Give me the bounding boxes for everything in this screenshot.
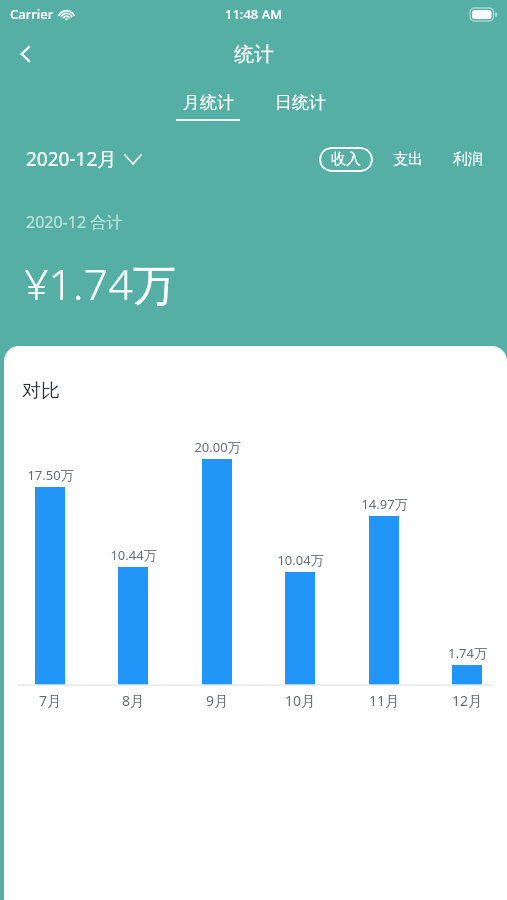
button[interactable]: 月统计	[170, 92, 246, 121]
staticText: 9月	[206, 691, 229, 710]
staticText: 日统计	[275, 92, 326, 113]
staticText: 17.50万	[27, 466, 74, 484]
staticText: 20.00万	[194, 438, 241, 456]
staticText: 7月	[39, 691, 62, 710]
staticText: 14.97万	[361, 495, 408, 513]
staticText: 对比	[22, 379, 60, 403]
button[interactable]: 利润	[449, 147, 487, 172]
staticText: 11:48 AM	[225, 5, 283, 23]
staticText: 统计	[234, 42, 274, 67]
staticText: 10.44万	[110, 546, 157, 564]
staticText: 8月	[122, 691, 145, 710]
button[interactable]: 支出	[389, 147, 427, 172]
staticText: 支出	[393, 150, 423, 169]
button[interactable]: Back	[4, 32, 48, 76]
staticText: 收入	[331, 150, 361, 169]
staticText: 10.04万	[277, 551, 324, 569]
staticText: 11月	[369, 691, 400, 710]
staticText: ¥1.74万	[24, 254, 176, 313]
staticText: 2020-12 合计	[26, 211, 123, 233]
button[interactable]: 收入	[319, 147, 373, 172]
staticText: 1.74万	[448, 644, 487, 662]
staticText: 月统计	[183, 92, 234, 113]
staticText: 2020-12月	[26, 146, 117, 172]
button[interactable]: 2020-12月	[26, 146, 141, 172]
staticText: 10月	[285, 691, 316, 710]
staticText: 利润	[453, 150, 483, 169]
staticText: Carrier	[10, 5, 54, 23]
staticText: 12月	[452, 691, 483, 710]
button[interactable]: 日统计	[262, 92, 338, 121]
